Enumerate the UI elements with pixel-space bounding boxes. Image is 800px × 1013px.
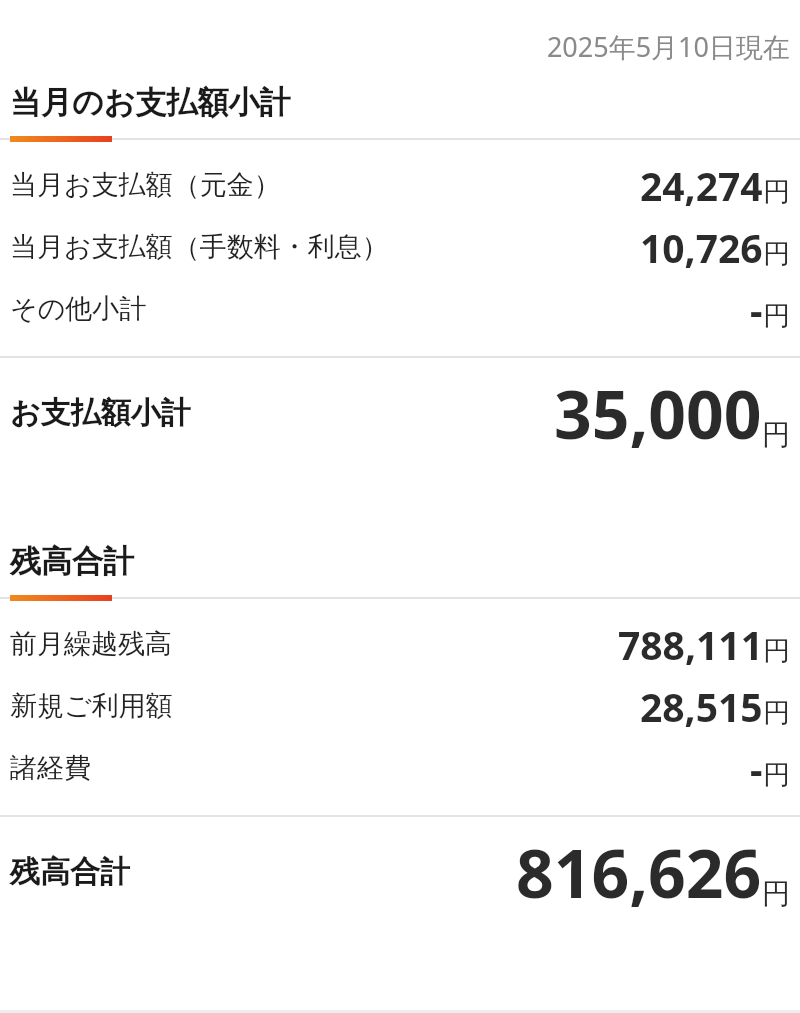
staticText: 新規ご利用額 (10, 689, 173, 723)
staticText: 円 (763, 299, 790, 333)
button[interactable]: 前月繰越残高 (0, 613, 800, 675)
button[interactable]: 諸経費 (0, 737, 800, 799)
staticText: 円 (762, 417, 790, 452)
staticText: 10,726 (640, 221, 763, 274)
button[interactable]: 残高合計 (0, 817, 800, 927)
staticText: 残高合計 (10, 542, 134, 581)
staticText: 円 (763, 758, 790, 792)
button[interactable]: 当月お支払額（元金） (0, 154, 800, 216)
staticText: 円 (763, 237, 790, 271)
button[interactable]: その他小計 (0, 278, 800, 340)
staticText: 788,111 (618, 618, 763, 671)
staticText: 当月お支払額（元金） (10, 168, 281, 202)
staticText: 円 (763, 175, 790, 209)
staticText: 円 (762, 876, 790, 911)
button[interactable]: 当月お支払額（手数料・利息） (0, 216, 800, 278)
staticText: 残高合計 (10, 853, 130, 891)
staticText: 当月のお支払額小計 (10, 83, 291, 122)
staticText: 前月繰越残高 (10, 627, 172, 661)
staticText: 28,515 (640, 680, 763, 733)
staticText: - (750, 283, 763, 336)
staticText: 2025年5月10日現在 (0, 28, 790, 65)
staticText: 24,274 (640, 159, 763, 212)
staticText: その他小計 (10, 292, 147, 326)
button[interactable]: 新規ご利用額 (0, 675, 800, 737)
staticText: お支払額小計 (10, 394, 191, 432)
staticText: 諸経費 (10, 751, 91, 785)
staticText: 当月お支払額（手数料・利息） (10, 230, 389, 264)
staticText: 816,626 (516, 827, 762, 917)
staticText: 円 (763, 696, 790, 730)
staticText: - (750, 742, 763, 795)
staticText: 円 (763, 634, 790, 668)
button[interactable]: お支払額小計 (0, 358, 800, 468)
staticText: 35,000 (554, 368, 762, 458)
